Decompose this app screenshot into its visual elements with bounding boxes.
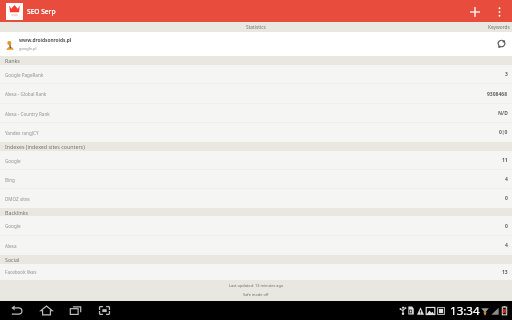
button[interactable]: Add <box>464 1 485 22</box>
staticText: 9308468 <box>487 91 508 98</box>
staticText: 11 <box>502 157 508 164</box>
staticText: 0 <box>505 223 508 230</box>
staticText: Statistics <box>246 24 266 31</box>
staticText: Bing <box>5 177 15 183</box>
button[interactable]: Recent apps <box>63 301 87 320</box>
button[interactable]: More options <box>489 1 510 22</box>
staticText: 13 <box>502 269 508 276</box>
staticText: Ranks <box>5 57 20 64</box>
button[interactable]: Statistics <box>246 24 266 31</box>
staticText: www.droidsonroids.pl <box>19 37 72 44</box>
button[interactable]: Home <box>34 301 58 320</box>
button[interactable]: Alexa - Global Rank <box>0 84 512 104</box>
button[interactable]: Google PageRank <box>0 65 512 84</box>
button[interactable]: Keywords <box>488 24 510 31</box>
button[interactable]: Facebook likes <box>0 264 512 280</box>
staticText: Keywords <box>488 24 510 31</box>
button[interactable]: Back <box>4 301 28 320</box>
staticText: Safe mode off <box>243 292 269 297</box>
staticText: 13:34 <box>450 303 480 319</box>
staticText: SEO Serp <box>27 7 56 16</box>
button[interactable]: Google <box>0 151 512 170</box>
staticText: Facebook likes <box>5 269 37 275</box>
button[interactable]: Alexa - Country Rank <box>0 104 512 123</box>
staticText: 0 <box>505 195 508 202</box>
button[interactable]: Screenshot <box>92 301 116 320</box>
staticText: 3 <box>505 71 508 78</box>
staticText: google.pl <box>19 46 37 51</box>
button[interactable]: Yandex rangJCY <box>0 123 512 142</box>
staticText: 0|0 <box>499 129 508 136</box>
staticText: Google <box>5 158 21 164</box>
staticText: Alexa - Global Rank <box>5 91 47 97</box>
staticText: Indexes (indexed sites counters) <box>5 143 85 150</box>
button[interactable]: Alexa <box>0 236 512 255</box>
button[interactable]: SEO Serp app icon <box>6 3 23 20</box>
button[interactable]: Google <box>0 216 512 236</box>
staticText: 4 <box>505 242 508 249</box>
staticText: Last updated: 13 minutes ago <box>229 283 284 288</box>
staticText: DMOZ sites <box>5 196 30 202</box>
staticText: Backlinks <box>5 209 29 216</box>
button[interactable]: Refresh <box>492 35 510 53</box>
staticText: Alexa - Country Rank <box>5 111 50 117</box>
staticText: Yandex rangJCY <box>5 130 39 136</box>
staticText: Google PageRank <box>5 72 44 78</box>
button[interactable]: Bing <box>0 170 512 189</box>
staticText: Social <box>5 256 20 263</box>
staticText: Alexa <box>5 243 17 249</box>
button[interactable]: www.droidsonroids.pl <box>0 32 512 56</box>
button[interactable]: DMOZ sites <box>0 189 512 208</box>
staticText: Google <box>5 223 21 229</box>
staticText: 4 <box>505 176 508 183</box>
staticText: N/D <box>498 110 508 117</box>
